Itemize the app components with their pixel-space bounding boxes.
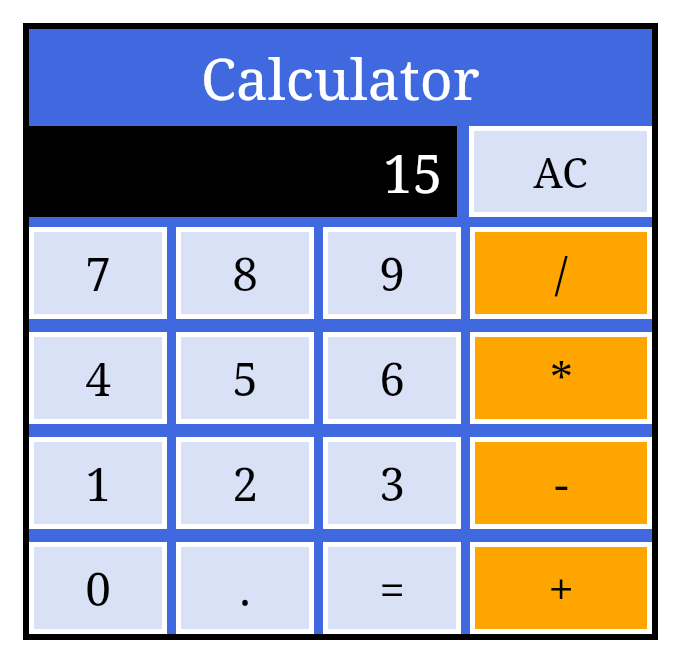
button[interactable]: 3 [328, 442, 456, 524]
button[interactable]: . [181, 547, 309, 629]
staticText: - [554, 452, 569, 515]
staticText: / [554, 242, 568, 305]
button[interactable]: 6 [328, 337, 456, 419]
staticText: + [548, 557, 574, 620]
button[interactable]: + [475, 547, 647, 629]
button[interactable]: 7 [34, 232, 162, 314]
staticText: Calculator [201, 39, 480, 117]
staticText: 15 [383, 136, 443, 208]
staticText: 5 [232, 347, 258, 410]
staticText: AC [533, 143, 588, 200]
staticText: = [379, 557, 405, 620]
button[interactable]: 4 [34, 337, 162, 419]
button[interactable]: - [475, 442, 647, 524]
staticText: 6 [379, 347, 405, 410]
staticText: 4 [85, 347, 111, 410]
button[interactable]: 8 [181, 232, 309, 314]
button[interactable]: AC [474, 131, 647, 212]
staticText: . [239, 557, 251, 620]
button[interactable]: 0 [34, 547, 162, 629]
button[interactable]: 9 [328, 232, 456, 314]
button[interactable]: 1 [34, 442, 162, 524]
button[interactable]: 2 [181, 442, 309, 524]
button[interactable]: 5 [181, 337, 309, 419]
staticText: 7 [85, 242, 111, 305]
staticText: 1 [85, 452, 111, 515]
button[interactable]: / [475, 232, 647, 314]
staticText: 2 [232, 452, 258, 515]
button[interactable]: * [475, 337, 647, 419]
staticText: 9 [379, 242, 405, 305]
staticText: 0 [85, 557, 111, 620]
button[interactable]: = [328, 547, 456, 629]
staticText: 3 [379, 452, 405, 515]
staticText: 8 [232, 242, 258, 305]
staticText: * [550, 347, 573, 410]
